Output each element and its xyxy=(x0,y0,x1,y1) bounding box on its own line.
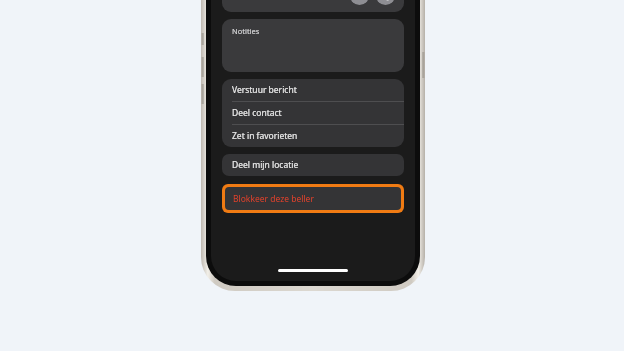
button[interactable]: Zet in favorieten xyxy=(222,125,404,147)
staticText: Verstuur bericht xyxy=(232,84,297,96)
button[interactable]: Verstuur bericht xyxy=(222,79,404,101)
staticText: Deel contact xyxy=(232,107,282,119)
staticText: Notities xyxy=(232,26,260,36)
button[interactable]: Blokkeer deze beller xyxy=(225,187,401,210)
staticText: Blokkeer deze beller xyxy=(233,193,314,205)
button[interactable]: Deel contact xyxy=(222,102,404,124)
button[interactable]: FaceTime video xyxy=(350,0,369,5)
staticText: Zet in favorieten xyxy=(232,130,298,142)
staticText: Deel mijn locatie xyxy=(232,159,299,171)
button[interactable]: Notities xyxy=(222,19,404,72)
button[interactable]: FaceTime audio xyxy=(376,0,395,5)
button[interactable]: FaceTime xyxy=(222,0,404,12)
button[interactable]: Deel mijn locatie xyxy=(222,154,404,176)
